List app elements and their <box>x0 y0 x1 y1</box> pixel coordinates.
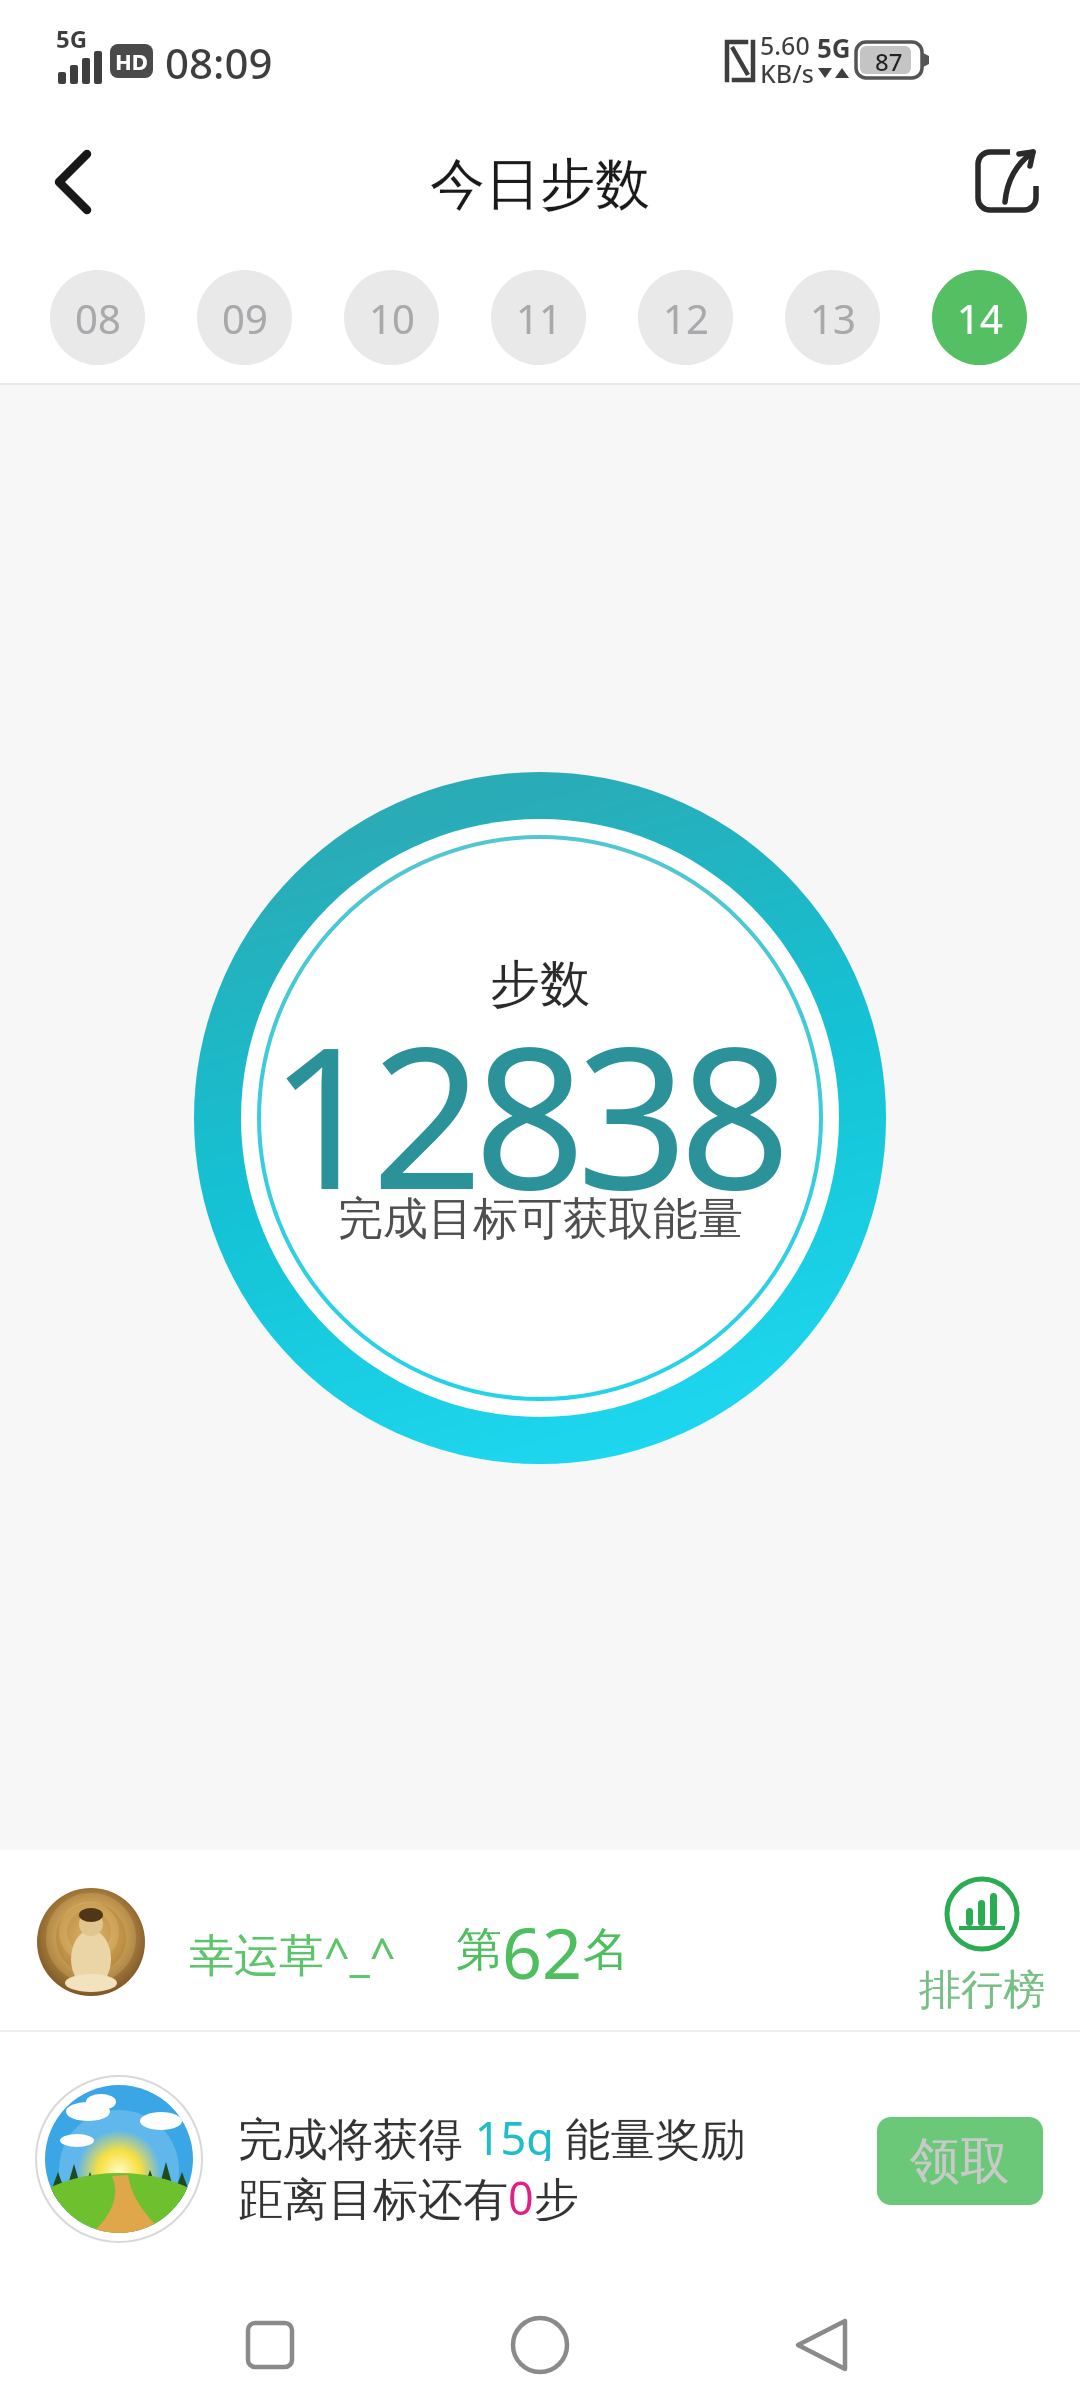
button[interactable]: 08 <box>50 270 145 365</box>
staticText: 5.60 <box>760 28 810 58</box>
staticText: 第 <box>456 1921 502 1979</box>
button[interactable]: 13 <box>785 270 880 365</box>
staticText: 步数 <box>490 953 590 1016</box>
staticText: 幸运草^_^ <box>189 1923 396 1979</box>
staticText: 5G <box>56 22 88 50</box>
staticText: 13 <box>810 291 856 345</box>
staticText: 08:09 <box>165 34 273 88</box>
button[interactable]: 09 <box>197 270 292 365</box>
staticText: 完成目标可获取能量 <box>338 1191 743 1248</box>
staticText: 领取 <box>910 2130 1010 2193</box>
staticText: 10 <box>369 291 415 345</box>
button[interactable]: 排行榜 <box>910 1864 1054 2024</box>
staticText: 08 <box>75 291 121 345</box>
staticText: 5G <box>817 30 851 64</box>
staticText: 名 <box>583 1921 629 1979</box>
button[interactable]: 14 <box>932 270 1027 365</box>
button[interactable]: 幸运草^_^ <box>0 1852 1080 2030</box>
button[interactable]: 11 <box>491 270 586 365</box>
button[interactable]: 12 <box>638 270 733 365</box>
staticText: 14 <box>957 291 1003 345</box>
button[interactable]: 领取 <box>877 2117 1043 2205</box>
staticText: 11 <box>516 291 562 345</box>
button[interactable] <box>210 2285 330 2405</box>
button[interactable] <box>30 140 114 224</box>
staticText: 完成将获得 15g 能量奖励 <box>238 2107 746 2161</box>
button[interactable] <box>480 2285 600 2405</box>
staticText: 62 <box>502 1904 583 1996</box>
staticText: 距离目标还有0步 <box>238 2167 579 2221</box>
button[interactable] <box>752 2285 872 2405</box>
staticText: 09 <box>222 291 268 345</box>
staticText: KB/s <box>760 56 814 86</box>
button[interactable]: 10 <box>344 270 439 365</box>
staticText: 今日步数 <box>430 150 650 216</box>
staticText: 87 <box>875 45 903 78</box>
staticText: 排行榜 <box>919 1964 1045 2016</box>
staticText: HD <box>115 46 148 76</box>
button[interactable] <box>966 138 1050 222</box>
staticText: 12 <box>663 291 709 345</box>
staticText: 12838 <box>269 981 782 1191</box>
